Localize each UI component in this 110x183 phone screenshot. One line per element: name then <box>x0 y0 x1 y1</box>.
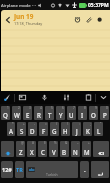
button[interactable]: # <box>27 141 36 157</box>
staticText: D <box>30 127 35 135</box>
staticText: @ <box>21 141 24 145</box>
button[interactable]: 2 <box>12 106 21 120</box>
staticText: 12# <box>2 166 12 173</box>
staticText: & <box>65 141 68 145</box>
button[interactable]: 1 <box>1 106 10 120</box>
staticText: / <box>56 122 58 126</box>
button[interactable]: + <box>82 141 91 157</box>
staticText: 6 <box>62 106 64 110</box>
staticText: L <box>97 127 101 135</box>
staticText: C <box>41 148 45 156</box>
button[interactable]: . <box>80 161 89 178</box>
staticText: * <box>12 122 14 126</box>
staticText: Turkish <box>46 172 58 177</box>
staticText: H <box>63 127 68 135</box>
staticText: Z <box>19 148 23 156</box>
staticText: U <box>69 111 74 119</box>
button[interactable]: " <box>94 122 103 136</box>
button[interactable]: Clipboard <box>83 91 93 104</box>
staticText: 3 <box>29 106 31 110</box>
staticText: % <box>54 141 57 145</box>
staticText: Q <box>3 111 8 119</box>
button[interactable]: 12# <box>1 161 13 178</box>
button[interactable]: : <box>72 122 81 136</box>
staticText: \ <box>67 122 69 126</box>
button[interactable]: Attach <box>83 14 93 24</box>
button[interactable]: Voice input <box>39 91 49 104</box>
button[interactable]: Enter <box>91 161 109 178</box>
staticText: - <box>34 122 36 126</box>
staticText: " <box>100 122 102 126</box>
staticText: G <box>52 127 57 135</box>
button[interactable]: Space <box>26 161 78 178</box>
button[interactable]: $ <box>38 141 47 157</box>
staticText: 17:18, Thursday <box>14 21 43 26</box>
button[interactable]: 4 <box>34 106 43 120</box>
button[interactable]: Shift <box>1 141 14 157</box>
staticText: X <box>30 148 34 156</box>
staticText: # <box>32 141 35 145</box>
staticText: J <box>76 127 78 135</box>
button[interactable]: 5 <box>45 106 54 120</box>
staticText: abc <box>29 168 35 172</box>
button[interactable]: Reminder <box>72 14 82 24</box>
staticText: . <box>84 166 86 174</box>
button[interactable]: 7 <box>67 106 76 120</box>
button[interactable]: Backspace <box>93 141 109 157</box>
button[interactable]: Sticker <box>17 91 27 104</box>
staticText: TR <box>16 166 23 173</box>
staticText: F <box>42 127 46 135</box>
button[interactable]: / <box>50 122 59 136</box>
button[interactable]: Back <box>2 14 13 25</box>
staticText: ; <box>90 122 91 126</box>
button[interactable]: 6 <box>56 106 65 120</box>
button[interactable]: = <box>39 122 48 136</box>
staticText: M <box>84 148 90 156</box>
staticText: + <box>88 141 90 145</box>
button[interactable]: 0 <box>100 106 109 120</box>
staticText: 05:37PM <box>88 2 109 9</box>
button[interactable]: 9 <box>89 106 98 120</box>
button[interactable]: - <box>28 122 37 136</box>
staticText: V <box>52 148 56 156</box>
staticText: : <box>79 122 80 126</box>
staticText: 8 <box>84 106 86 110</box>
staticText: T <box>48 111 52 119</box>
staticText: = <box>45 122 47 126</box>
staticText: + <box>23 122 25 126</box>
button[interactable]: 8 <box>78 106 87 120</box>
button[interactable]: ; <box>83 122 92 136</box>
staticText: R <box>37 111 41 119</box>
staticText: Airplane mode <box>1 2 31 8</box>
button[interactable]: @ <box>16 141 25 157</box>
staticText: 7 <box>73 106 75 110</box>
button[interactable]: * <box>7 122 15 136</box>
staticText: P <box>103 111 107 119</box>
staticText: K <box>86 127 90 135</box>
button[interactable]: Handwriting <box>2 91 12 104</box>
button[interactable]: – <box>71 141 80 157</box>
button[interactable]: Hide keyboard <box>98 91 108 104</box>
staticText: B <box>62 148 67 156</box>
button[interactable]: \ <box>61 122 70 136</box>
staticText: I <box>81 111 84 119</box>
staticText: – <box>77 141 79 145</box>
button[interactable]: TR <box>15 161 24 178</box>
staticText: S <box>20 127 24 135</box>
button[interactable]: + <box>17 122 26 136</box>
staticText: A <box>9 127 13 135</box>
button[interactable]: % <box>49 141 58 157</box>
staticText: W <box>14 111 20 119</box>
staticText: 1 <box>7 106 9 110</box>
button[interactable]: Keyboard settings <box>61 91 71 104</box>
staticText: 2 <box>18 106 20 110</box>
staticText: O <box>91 111 96 119</box>
staticText: 4 <box>40 106 42 110</box>
button[interactable]: & <box>60 141 69 157</box>
staticText: E <box>26 111 30 119</box>
button[interactable]: More options <box>94 14 104 24</box>
button[interactable]: 3 <box>23 106 32 120</box>
staticText: 5 <box>51 106 53 110</box>
staticText: 0 <box>106 106 108 110</box>
staticText: 9 <box>95 106 97 110</box>
